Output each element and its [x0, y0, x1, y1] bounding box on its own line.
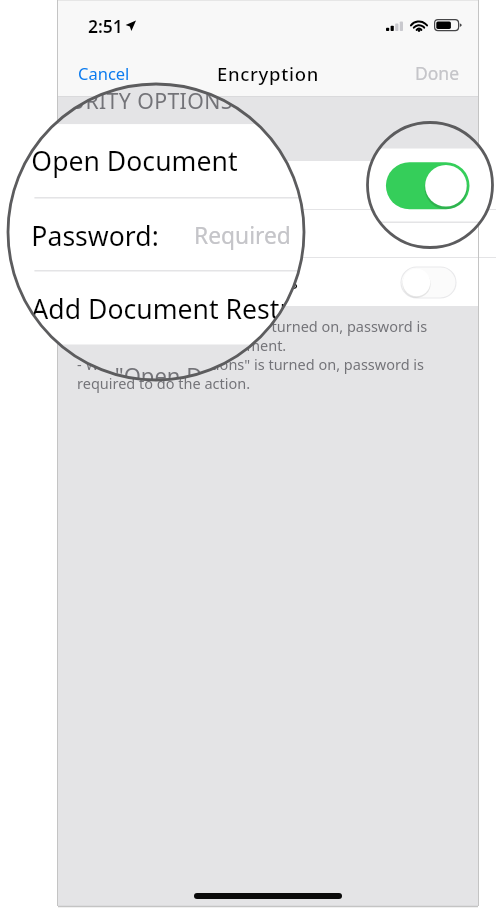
staticText: SECURITY OPTIONS	[74, 136, 207, 155]
button[interactable]: Done	[403, 53, 472, 93]
button[interactable]: Switch on	[386, 162, 469, 209]
button[interactable]: Switch on	[401, 170, 456, 201]
staticText: Open Document	[31, 142, 238, 179]
staticText: Password:	[0, 241, 17, 278]
staticText: Add Document Restrictions	[74, 270, 298, 294]
staticText: Cancel	[37, 0, 116, 7]
button[interactable]: Switch off	[401, 267, 456, 298]
button[interactable]: Switch off	[386, 310, 469, 357]
button[interactable]: Open Document	[58, 161, 478, 209]
staticText: 2:51	[88, 14, 123, 38]
staticText: - When "Open Document" is turned on, pas…	[36, 360, 500, 477]
button[interactable]: Password:	[0, 223, 500, 294]
button[interactable]: Password:	[7, 199, 500, 270]
staticText: Required	[181, 224, 245, 244]
staticText: Password:	[31, 217, 159, 253]
staticText: Required	[194, 220, 291, 250]
staticText: Required	[51, 244, 149, 275]
staticText: SECURITY OPTIONS	[0, 110, 91, 139]
button[interactable]: Open Document	[0, 148, 500, 221]
button[interactable]: Done	[389, 0, 494, 45]
staticText: Done	[415, 61, 460, 85]
staticText: - When "Open Document" is turned on, pas…	[0, 384, 500, 501]
button[interactable]: Cancel	[19, 0, 135, 21]
staticText: Cancel	[78, 62, 130, 84]
staticText: Add Document Restrictions	[31, 290, 372, 326]
button[interactable]: Add Document Restrictions	[58, 258, 478, 306]
button[interactable]: Add Document Restrictions	[7, 271, 500, 344]
staticText: SECURITY OPTIONS	[31, 86, 234, 115]
staticText: Encryption	[217, 61, 320, 86]
button[interactable]: Open Document	[7, 124, 500, 197]
staticText: - When "Open Document" is turned on, pas…	[77, 316, 477, 393]
staticText: Encryption	[106, 0, 263, 34]
button[interactable]: Cancel	[66, 53, 142, 93]
staticText: Done	[407, 0, 476, 33]
staticText: Encryption	[249, 0, 405, 10]
button[interactable]: Add Document Restrictions	[0, 296, 500, 369]
staticText: Open Document	[0, 167, 96, 203]
staticText: Password:	[74, 222, 158, 246]
staticText: Add Document Restrictions	[0, 314, 229, 351]
button[interactable]: Password:	[58, 210, 478, 257]
